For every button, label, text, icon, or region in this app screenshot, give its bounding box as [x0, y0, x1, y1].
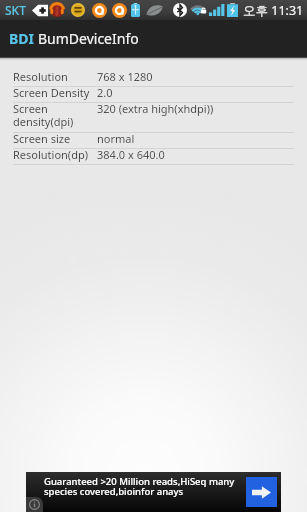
staticText: Screen density(dpi) [13, 101, 97, 129]
staticText: normal [97, 131, 135, 146]
button[interactable]: Open ad [246, 477, 277, 507]
staticText: Resolution(dp) [13, 147, 97, 162]
staticText: BumDeviceInfo [38, 29, 139, 48]
button[interactable]: Ad info [26, 497, 43, 512]
staticText: Guaranteed >20 Million reads,HiSeq many … [44, 475, 235, 498]
button[interactable]: Screen Density [0, 87, 307, 103]
staticText: 320 (extra high(xhdpi)) [97, 101, 214, 116]
button[interactable]: Screen density(dpi) [0, 103, 307, 133]
button[interactable]: Resolution(dp) [0, 149, 307, 165]
button[interactable]: BDI [0, 20, 307, 57]
staticText: SKT [5, 2, 26, 18]
button[interactable]: Guaranteed >20 Million reads,HiSeq many … [26, 472, 281, 512]
staticText: Resolution [13, 69, 97, 84]
button[interactable]: Screen size [0, 133, 307, 149]
staticText: Screen size [13, 131, 97, 146]
staticText: Screen Density [13, 85, 97, 100]
staticText: 768 x 1280 [97, 69, 153, 84]
staticText: 오후 11:31 [243, 2, 304, 19]
button[interactable]: Resolution [0, 71, 307, 87]
staticText: 384.0 x 640.0 [97, 147, 165, 162]
staticText: 2.0 [97, 85, 113, 100]
staticText: BDI [9, 29, 35, 48]
